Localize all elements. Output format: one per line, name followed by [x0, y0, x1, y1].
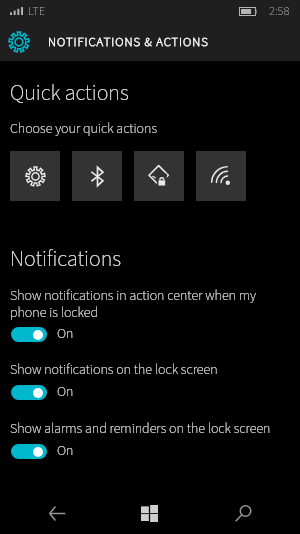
staticText: Show notifications in action center when…: [10, 286, 288, 322]
staticText: NOTIFICATIONS & ACTIONS: [48, 33, 209, 51]
button[interactable]: Show notifications on the lock screen: [0, 360, 300, 406]
button[interactable]: Show notifications in action center when…: [0, 286, 300, 358]
button[interactable]: Back: [10, 493, 104, 534]
staticText: 2:58: [269, 2, 290, 20]
staticText: Notifications: [10, 243, 122, 274]
staticText: On: [57, 382, 74, 402]
staticText: Choose your quick actions: [10, 119, 157, 139]
staticText: On: [57, 324, 74, 344]
button[interactable]: Wi-Fi quick action: [196, 151, 246, 201]
staticText: LTE: [28, 2, 46, 20]
staticText: Quick actions: [10, 77, 129, 108]
button[interactable]: Show alarms and reminders on the lock sc…: [0, 419, 300, 465]
button[interactable]: Search: [195, 493, 291, 534]
staticText: On: [57, 441, 74, 461]
button[interactable]: Settings quick action: [10, 151, 60, 201]
button[interactable]: Rotation lock quick action: [134, 151, 184, 201]
button[interactable]: Bluetooth quick action: [72, 151, 122, 201]
button[interactable]: NOTIFICATIONS & ACTIONS: [0, 22, 300, 61]
button[interactable]: Start: [104, 493, 195, 534]
staticText: Show alarms and reminders on the lock sc…: [10, 419, 288, 439]
staticText: Show notifications on the lock screen: [10, 360, 288, 380]
